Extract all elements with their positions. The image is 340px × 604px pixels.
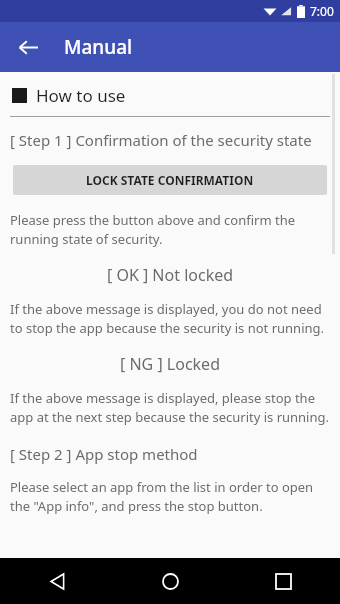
staticText: How to use xyxy=(36,84,126,107)
staticText: If the above message is displayed, pleas… xyxy=(10,389,330,426)
button[interactable]: Recent apps xyxy=(227,558,340,604)
staticText: Please select an app from the list in or… xyxy=(10,478,330,515)
button[interactable]: Home xyxy=(114,558,227,604)
staticText: Manual xyxy=(64,34,133,60)
staticText: [ OK ] Not locked xyxy=(10,264,330,286)
staticText: [ Step 2 ] App stop method xyxy=(10,444,330,464)
button[interactable]: Back xyxy=(6,25,50,69)
staticText: If the above message is displayed, you d… xyxy=(10,300,330,337)
staticText: [ Step 1 ] Confirmation of the security … xyxy=(10,130,330,150)
button[interactable]: Back xyxy=(0,558,114,604)
button[interactable]: LOCK STATE CONFIRMATION xyxy=(13,165,327,195)
staticText: [ NG ] Locked xyxy=(10,353,330,375)
staticText: LOCK STATE CONFIRMATION xyxy=(86,172,254,188)
staticText: Please press the button above and confir… xyxy=(10,211,330,248)
staticText: 7:00 xyxy=(310,3,334,19)
